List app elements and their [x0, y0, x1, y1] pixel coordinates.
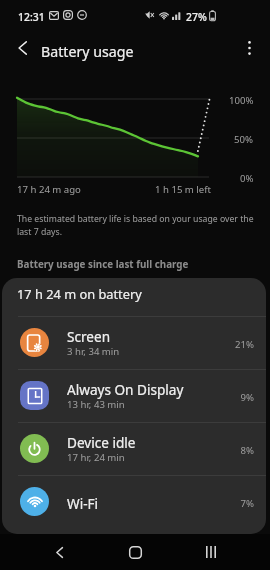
staticText: 21%: [2, 338, 254, 351]
staticText: Device idle: [67, 433, 136, 452]
staticText: 1 h 15 m left: [155, 183, 211, 196]
staticText: 17 hr, 24 min: [67, 451, 125, 464]
button[interactable]: Home: [112, 534, 158, 570]
button[interactable]: Recent apps: [188, 534, 234, 570]
staticText: 27%: [186, 10, 207, 24]
staticText: 12:31: [18, 10, 45, 24]
button[interactable]: More options: [231, 30, 267, 66]
staticText: 8%: [2, 444, 254, 457]
button[interactable]: Device idle: [2, 423, 266, 475]
staticText: 17 h 24 m ago: [17, 183, 81, 196]
button[interactable]: Navigate up: [4, 30, 40, 66]
staticText: Wi-Fi: [67, 494, 99, 513]
staticText: 50%: [234, 133, 253, 146]
staticText: 17 h 24 m on battery: [17, 285, 142, 302]
staticText: Battery usage since last full charge: [17, 258, 189, 271]
staticText: 9%: [2, 391, 254, 404]
staticText: 0%: [240, 172, 254, 185]
staticText: Screen: [67, 327, 111, 346]
button[interactable]: Wi-Fi: [2, 476, 266, 528]
staticText: 100%: [229, 94, 254, 107]
staticText: The estimated battery life is based on y…: [17, 213, 254, 238]
staticText: Always On Display: [67, 380, 184, 399]
staticText: 13 hr, 43 min: [67, 398, 125, 411]
staticText: 7%: [2, 497, 254, 510]
staticText: 3 hr, 34 min: [67, 345, 120, 358]
button[interactable]: Back: [36, 534, 82, 570]
button[interactable]: Always On Display: [2, 370, 266, 422]
button[interactable]: Screen: [2, 317, 266, 369]
staticText: Battery usage: [41, 42, 134, 61]
